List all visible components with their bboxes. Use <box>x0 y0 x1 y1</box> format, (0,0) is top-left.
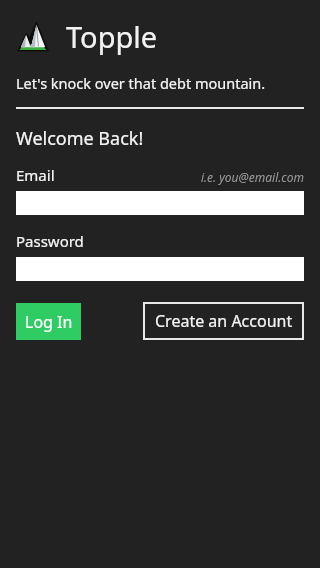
staticText: Log In <box>25 311 73 333</box>
staticText: i.e. you@email.com <box>200 169 304 185</box>
staticText: Topple <box>66 17 158 56</box>
staticText: Email <box>16 165 55 185</box>
button[interactable]: Create an Account <box>143 302 304 340</box>
other: Topple logo <box>16 20 50 54</box>
staticText: Password <box>16 231 84 251</box>
button[interactable]: Log In <box>16 303 81 340</box>
staticText: Let's knock over that debt mountain. <box>16 73 266 93</box>
staticText: Welcome Back! <box>16 126 144 151</box>
staticText: Create an Account <box>155 310 293 332</box>
